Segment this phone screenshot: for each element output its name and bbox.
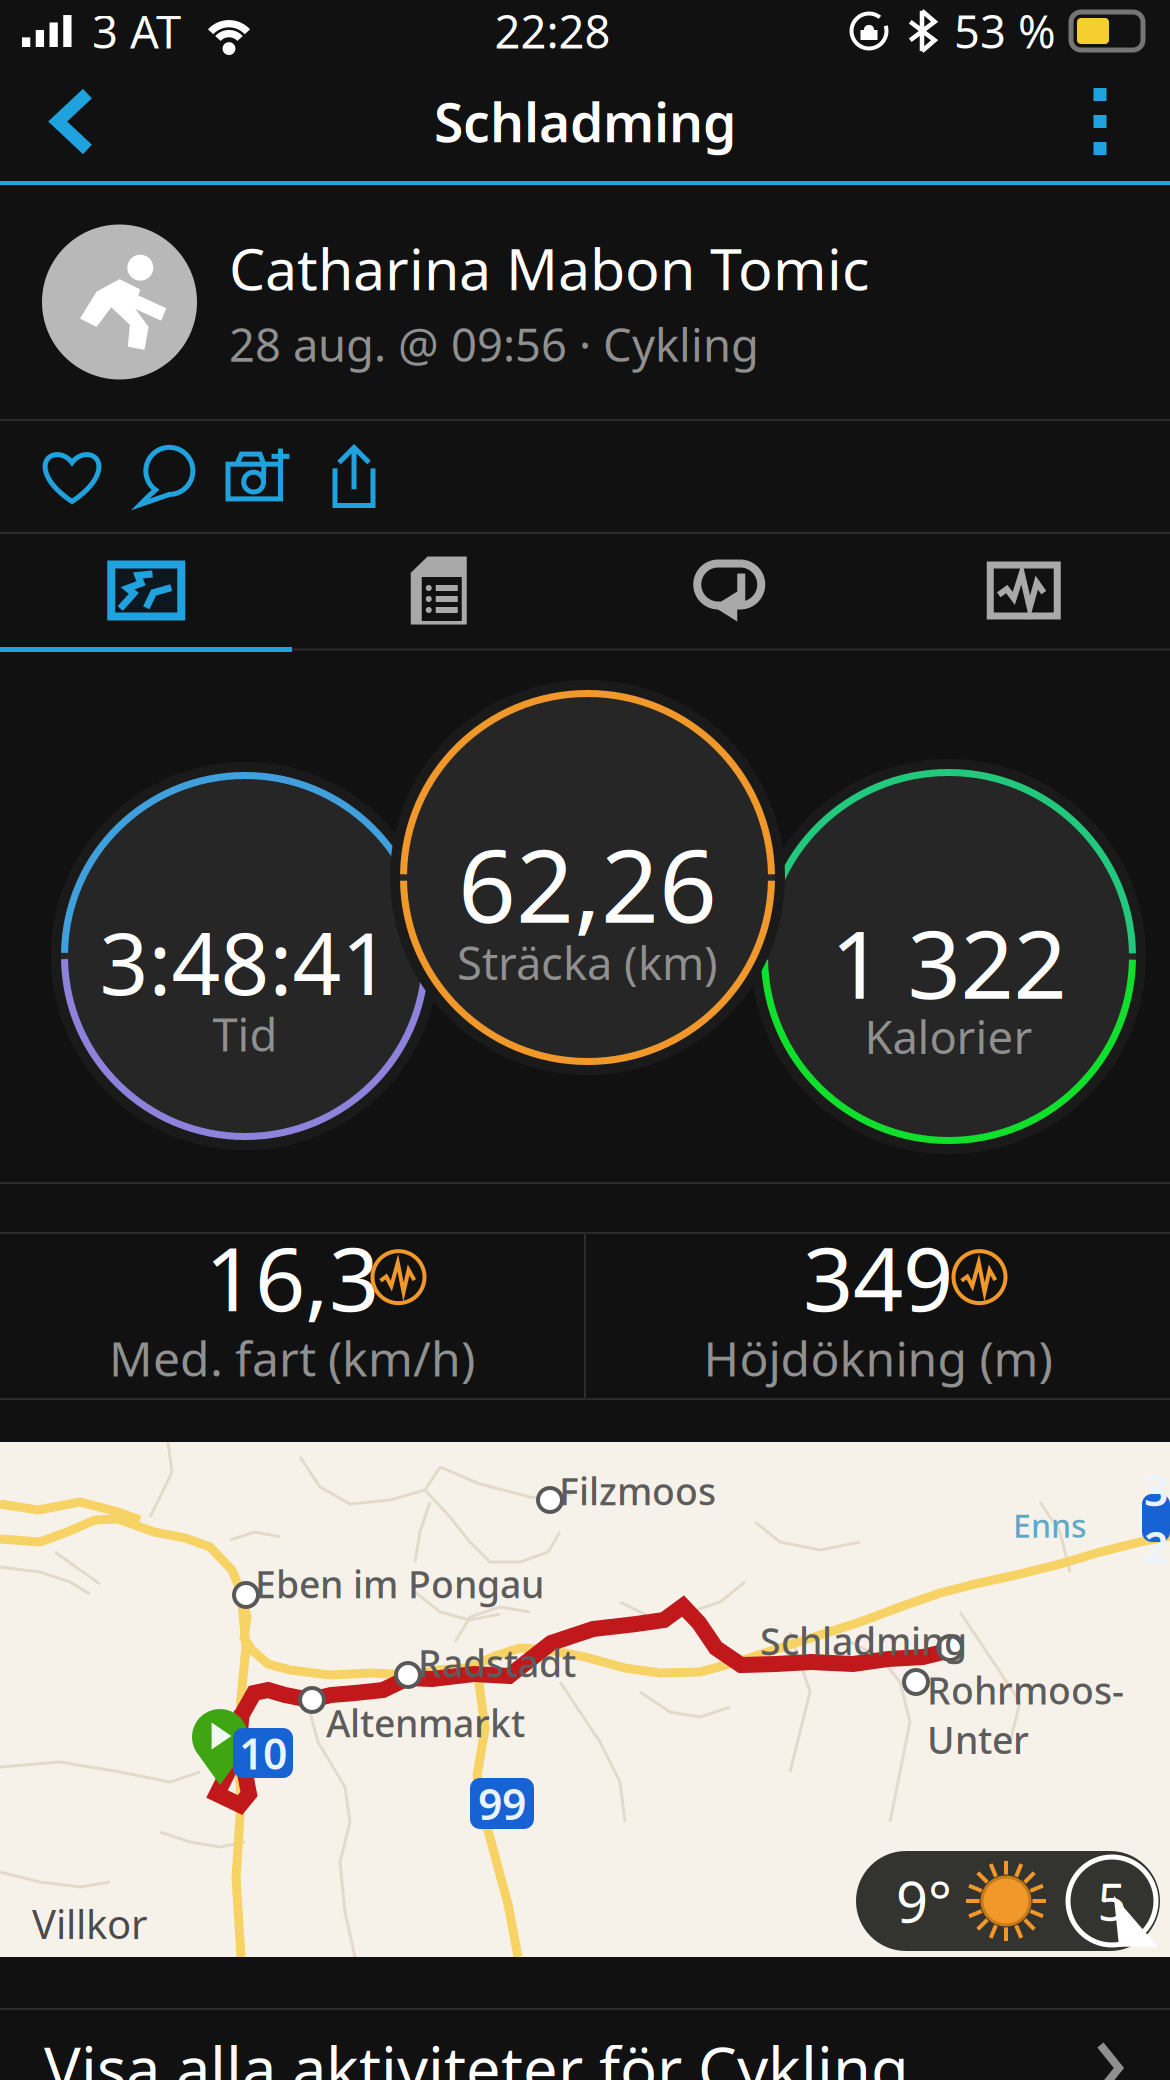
staticText: 9° (896, 1864, 952, 1938)
staticText: Kalorier (864, 1006, 1032, 1067)
button[interactable]: Details (292, 534, 585, 647)
button[interactable]: Back (14, 65, 132, 177)
staticText: 3:48:41 (99, 905, 390, 1019)
staticText: Villkor (32, 1897, 148, 1950)
staticText: 32 (1144, 1461, 1168, 1575)
button[interactable]: Visa alla aktiviteter för Cykling (0, 2010, 1170, 2080)
button[interactable]: More options (1044, 65, 1156, 177)
staticText: 10 (239, 1725, 287, 1781)
staticText: Schladming (434, 86, 736, 157)
staticText: 53 % (954, 1, 1056, 61)
staticText: 28 aug. @ 09:56 · Cykling (229, 314, 759, 374)
staticText: Altenmarkt (326, 1698, 525, 1748)
staticText: Tid (212, 1004, 277, 1064)
button[interactable]: Map (0, 534, 292, 647)
staticText: 99 (478, 1775, 526, 1832)
staticText: 5 (1097, 1867, 1126, 1935)
staticText: 22:28 (494, 1, 610, 61)
button[interactable]: Laps (585, 534, 877, 647)
staticText: Schladming (760, 1616, 967, 1666)
staticText: Sträcka (km) (457, 932, 718, 993)
staticText: Med. fart (km/h) (109, 1326, 475, 1390)
staticText: 62,26 (458, 816, 717, 951)
staticText: 349 (803, 1219, 953, 1336)
staticText: Rohrmoos-Unter (927, 1665, 1124, 1764)
staticText: Radstadt (418, 1638, 576, 1688)
staticText: Catharina Mabon Tomic (229, 230, 870, 306)
button[interactable]: Catharina Mabon Tomic (0, 185, 1170, 419)
staticText: 3 AT (92, 1, 181, 61)
button[interactable]: Like (25, 421, 119, 532)
staticText: Filzmoos (559, 1466, 716, 1516)
button[interactable]: Charts (877, 534, 1170, 647)
button[interactable]: Add photo (213, 421, 307, 532)
staticText: 1 322 (830, 900, 1066, 1024)
staticText: Eben im Pongau (255, 1559, 544, 1609)
button[interactable]: Share (307, 421, 401, 532)
staticText: 16,3 (205, 1219, 379, 1336)
button[interactable]: Comment (119, 421, 213, 532)
staticText: Visa alla aktiviteter för Cykling (44, 2027, 909, 2080)
staticText: Höjdökning (m) (703, 1326, 1052, 1390)
staticText: Enns (1013, 1504, 1087, 1546)
